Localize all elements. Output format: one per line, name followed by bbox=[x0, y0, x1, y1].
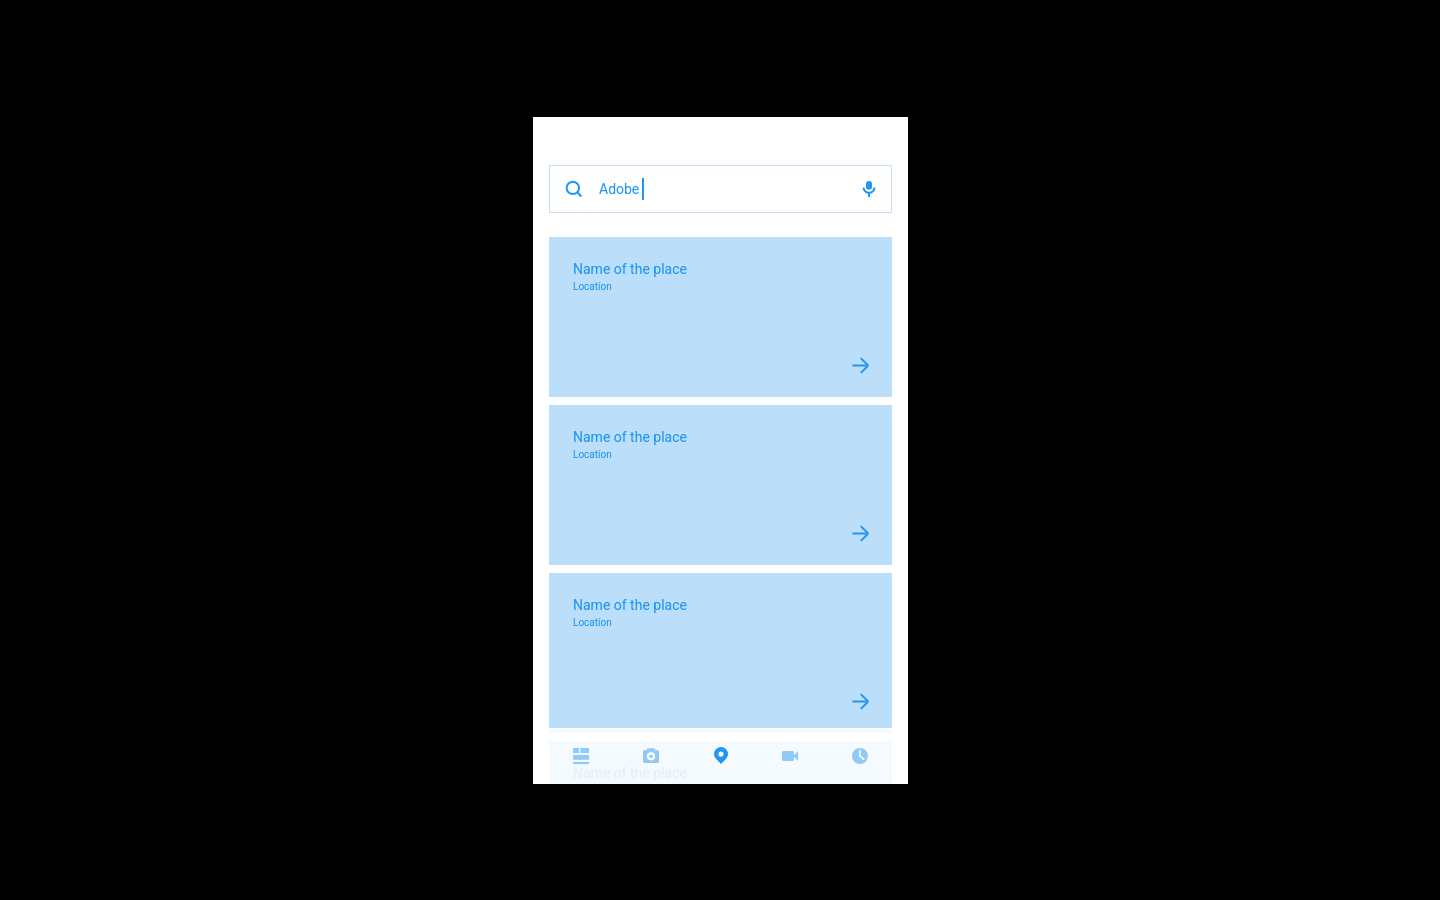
staticText: Name of the place bbox=[573, 429, 687, 445]
button[interactable]: Recent bbox=[825, 729, 895, 784]
button[interactable]: Voice search bbox=[845, 165, 892, 213]
staticText: Name of the place bbox=[573, 765, 687, 781]
button[interactable]: Feed bbox=[546, 729, 615, 784]
staticText: Location bbox=[573, 449, 612, 461]
staticText: Name of the place bbox=[573, 261, 687, 277]
staticText: Name of the place bbox=[573, 597, 687, 613]
staticText: Location bbox=[573, 617, 612, 629]
staticText: Location bbox=[573, 281, 612, 293]
button[interactable]: Camera bbox=[615, 729, 685, 784]
staticText: Adobe bbox=[599, 181, 640, 197]
button[interactable]: Name of the place bbox=[549, 573, 892, 733]
button[interactable]: Name of the place bbox=[549, 405, 892, 565]
button[interactable]: Name of the place bbox=[549, 237, 892, 397]
button[interactable]: Video bbox=[755, 729, 825, 784]
button[interactable]: Open place bbox=[848, 689, 872, 713]
button[interactable]: Adobe bbox=[549, 165, 892, 213]
button[interactable]: Open place bbox=[848, 353, 872, 377]
button[interactable]: Places bbox=[685, 729, 755, 784]
button[interactable]: Name of the place bbox=[549, 741, 892, 784]
button[interactable]: Open place bbox=[848, 521, 872, 545]
